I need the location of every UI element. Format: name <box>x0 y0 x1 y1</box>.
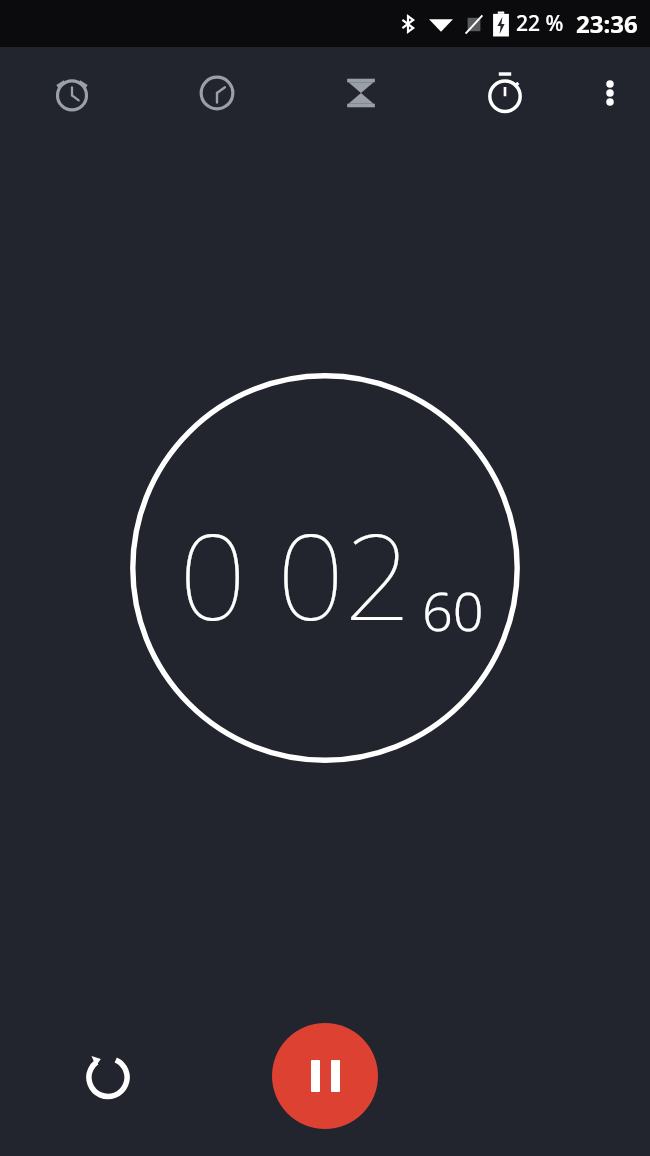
staticText: 60 <box>422 573 484 647</box>
button[interactable]: Clock <box>177 53 257 133</box>
button[interactable]: Reset <box>67 1035 149 1117</box>
staticText: 0 02 <box>179 494 412 655</box>
staticText: 23:36 <box>576 7 638 40</box>
button[interactable]: More options <box>578 61 642 125</box>
button[interactable]: Stopwatch <box>465 53 545 133</box>
button[interactable]: Timer <box>321 53 401 133</box>
button[interactable]: Alarm <box>32 53 112 133</box>
staticText: 22 % <box>516 9 564 38</box>
button[interactable]: Pause <box>272 1023 378 1129</box>
